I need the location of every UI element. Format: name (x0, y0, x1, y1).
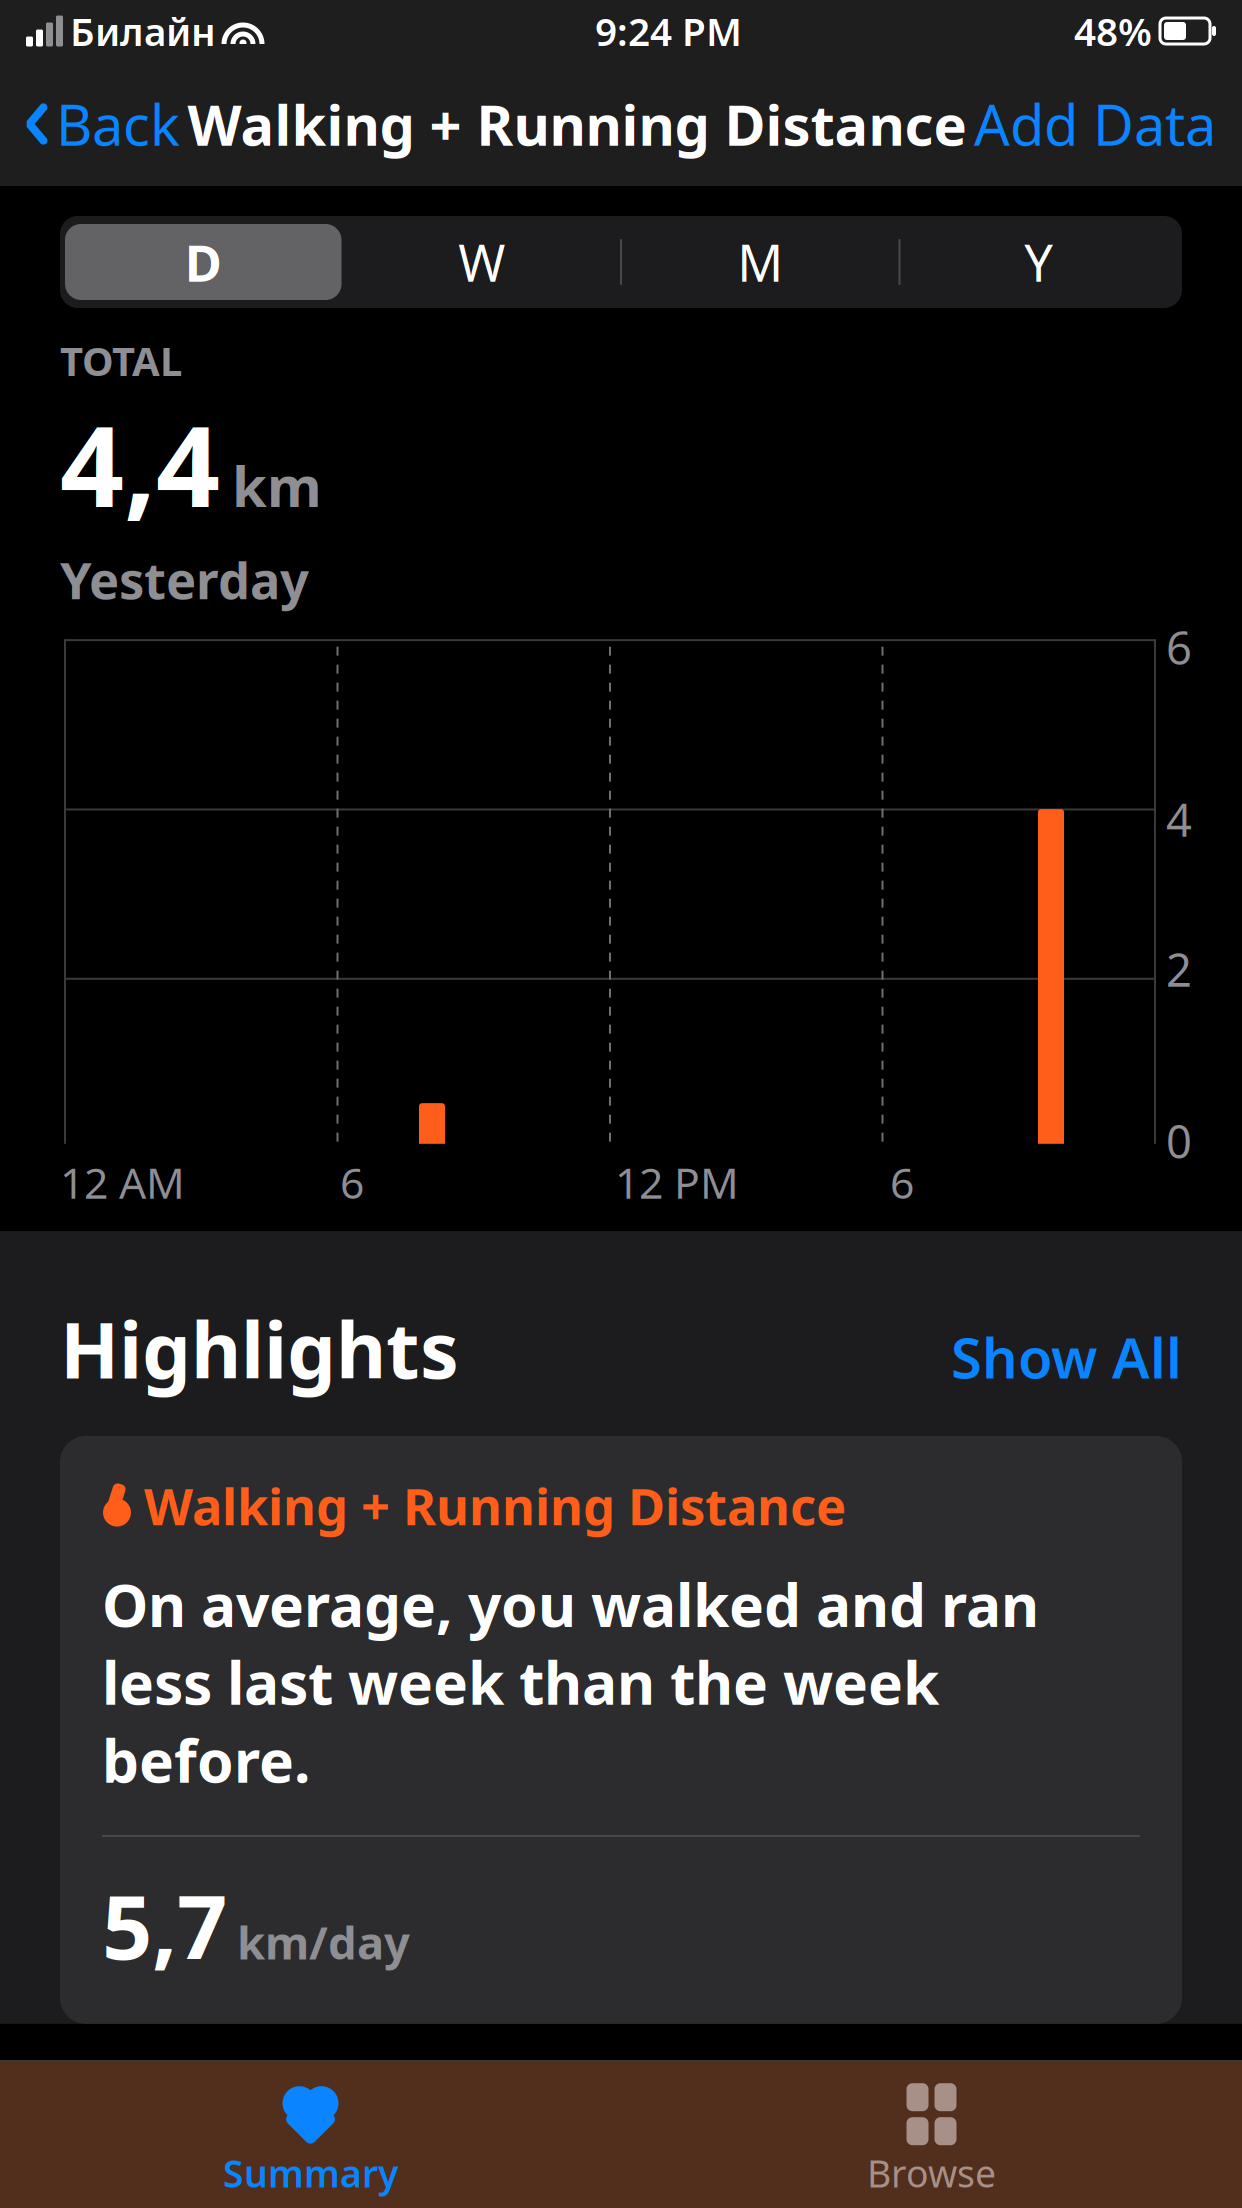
staticText: Add Data (974, 87, 1216, 161)
staticText: Walking + Running Distance (144, 1472, 846, 1539)
staticText: Highlights (60, 1297, 459, 1400)
staticText: 4 (1166, 789, 1192, 849)
staticText: 6 (1166, 617, 1192, 677)
staticText: Билайн (70, 5, 216, 57)
staticText: 9:24 PM (595, 5, 742, 57)
button[interactable]: M (622, 224, 898, 300)
staticText: 5,7 (102, 1867, 227, 1984)
staticText: Summary (223, 2148, 398, 2198)
staticText: 12 AM (60, 1154, 185, 1210)
button[interactable]: W (343, 224, 620, 300)
staticText: km/day (237, 1912, 410, 1972)
button[interactable]: Summary (0, 2070, 621, 2198)
staticText: TOTAL (60, 334, 182, 387)
staticText: 6 (890, 1154, 914, 1210)
staticText: 12 PM (615, 1154, 739, 1210)
staticText: 0 (1166, 1111, 1192, 1171)
staticText: 48% (1074, 5, 1152, 57)
staticText: Show All (951, 1320, 1182, 1394)
button[interactable]: Walking + Running Distance (60, 1436, 1182, 2024)
button[interactable]: Back (0, 77, 180, 171)
staticText: W (458, 228, 505, 296)
staticText: Yesterday (60, 546, 309, 613)
staticText: On average, you walked and ran less last… (102, 1565, 1039, 1799)
staticText: M (737, 228, 783, 296)
staticText: 4,4 (60, 389, 220, 538)
staticText: Y (1024, 228, 1053, 296)
staticText: Back (56, 87, 180, 161)
staticText: km (232, 448, 322, 522)
button[interactable]: D (65, 224, 341, 300)
button[interactable]: Show All (951, 1314, 1182, 1400)
button[interactable]: Browse (621, 2070, 1242, 2198)
staticText: 2 (1166, 939, 1192, 999)
staticText: Browse (867, 2148, 996, 2198)
button[interactable]: Y (900, 224, 1177, 300)
staticText: D (185, 228, 222, 296)
staticText: 6 (340, 1154, 364, 1210)
staticText: Walking + Running Distance (187, 87, 966, 161)
button[interactable]: Add Data (974, 77, 1242, 171)
